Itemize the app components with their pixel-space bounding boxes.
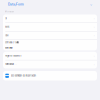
staticText: Entrada (5, 46, 12, 49)
button[interactable]: Entrada y salida (3, 40, 97, 45)
button[interactable]: Regimen aduanero (3, 52, 97, 60)
staticText: Regimen aduanero (5, 55, 21, 57)
staticText: › (94, 63, 95, 66)
staticText: Informacion (5, 11, 14, 13)
staticText: › (94, 54, 95, 57)
staticText: USA (5, 34, 8, 37)
staticText: › (94, 17, 95, 20)
staticText: SED Definicion de importacion (11, 74, 36, 77)
button[interactable]: USA (3, 31, 97, 40)
button[interactable]: Mes (3, 23, 97, 31)
button[interactable]: Data/Form (8, 3, 24, 6)
staticText: Entrada y salida (5, 41, 19, 44)
button[interactable]: SED Definicion de importacion (3, 71, 97, 80)
button[interactable]: Entrada (3, 45, 97, 50)
staticText: Mes (5, 26, 9, 28)
staticText: Data/Form (8, 3, 24, 6)
staticText: › (94, 34, 95, 37)
button[interactable]: Seleccionar... (3, 60, 97, 68)
staticText: Seleccionar... (5, 63, 17, 65)
button[interactable]: Options (88, 1, 94, 7)
button[interactable]: Sr (3, 14, 97, 23)
staticText: ⌄ (90, 3, 92, 6)
staticText: Sr (5, 17, 7, 20)
